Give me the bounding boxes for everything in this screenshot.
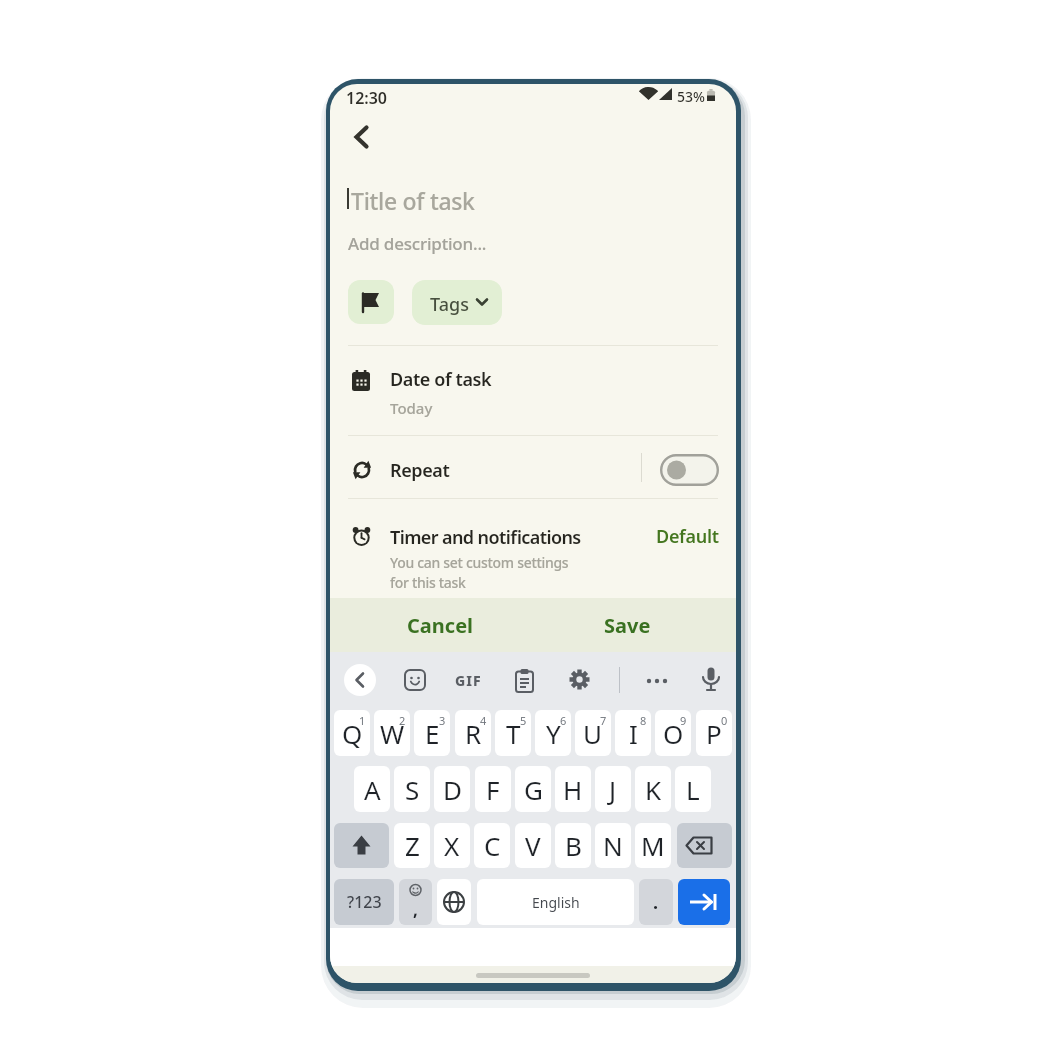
staticText: 6 <box>560 713 567 728</box>
button[interactable] <box>569 669 590 690</box>
button[interactable]: Q <box>334 710 370 756</box>
staticText: 3 <box>439 713 446 728</box>
button[interactable]: T <box>495 710 531 756</box>
staticText: R <box>465 716 482 751</box>
staticText: for this task <box>390 573 466 592</box>
staticText: Z <box>405 828 420 863</box>
button[interactable]: M <box>635 823 671 868</box>
staticText: J <box>609 772 617 807</box>
button[interactable]: H <box>555 766 591 812</box>
button[interactable] <box>334 823 389 868</box>
button[interactable]: A <box>354 766 390 812</box>
staticText: 5 <box>520 713 527 728</box>
button[interactable]: O <box>655 710 691 756</box>
staticText: X <box>444 828 460 863</box>
button[interactable] <box>354 126 369 148</box>
button[interactable] <box>701 667 721 693</box>
button[interactable] <box>344 664 376 696</box>
staticText: , <box>413 898 418 921</box>
button[interactable]: R <box>455 710 491 756</box>
staticText: I <box>629 716 638 751</box>
button[interactable]: Tags <box>412 280 502 325</box>
staticText: C <box>484 828 501 863</box>
staticText: Date of task <box>390 367 492 392</box>
staticText: H <box>563 772 583 807</box>
button[interactable] <box>660 454 719 486</box>
staticText: English <box>532 893 580 912</box>
staticText: L <box>686 772 700 807</box>
button[interactable]: U <box>575 710 611 756</box>
staticText: F <box>486 772 500 807</box>
staticText: 1 <box>359 713 366 728</box>
button[interactable]: X <box>434 823 470 868</box>
button[interactable]: W <box>374 710 410 756</box>
staticText: U <box>583 716 603 751</box>
button[interactable] <box>678 879 730 925</box>
staticText: Tags <box>430 292 469 317</box>
staticText: 0 <box>721 713 728 728</box>
staticText: Save <box>604 612 651 639</box>
button[interactable]: . <box>639 879 673 925</box>
staticText: Add description... <box>348 232 487 255</box>
button[interactable]: Date of task <box>330 354 736 429</box>
staticText: 53% <box>677 87 705 106</box>
button[interactable]: Y <box>535 710 571 756</box>
button[interactable]: F <box>475 766 511 812</box>
staticText: P <box>706 716 722 751</box>
staticText: 9 <box>680 713 687 728</box>
staticText: Y <box>546 716 561 751</box>
staticText: A <box>364 772 381 807</box>
staticText: Repeat <box>390 458 450 483</box>
staticText: E <box>425 716 440 751</box>
button[interactable]: E <box>414 710 450 756</box>
staticText: V <box>525 828 541 863</box>
button[interactable] <box>677 823 732 868</box>
button[interactable]: C <box>474 823 510 868</box>
staticText: 12:30 <box>346 87 388 109</box>
button[interactable]: Save <box>577 598 677 652</box>
button[interactable]: V <box>515 823 551 868</box>
button[interactable]: I <box>615 710 651 756</box>
button[interactable]: English <box>477 879 634 925</box>
button[interactable]: S <box>394 766 430 812</box>
staticText: You can set custom settings <box>390 553 569 572</box>
staticText: Q <box>342 716 363 751</box>
staticText: Today <box>390 398 433 418</box>
button[interactable]: N <box>595 823 631 868</box>
staticText: Cancel <box>407 612 474 639</box>
button[interactable]: G <box>515 766 551 812</box>
button[interactable]: Timer and notifications <box>330 514 736 594</box>
button[interactable]: B <box>555 823 591 868</box>
staticText: T <box>506 716 521 751</box>
button[interactable]: Repeat <box>330 444 736 492</box>
staticText: 8 <box>640 713 647 728</box>
staticText: K <box>645 772 662 807</box>
button[interactable] <box>348 280 394 324</box>
staticText: S <box>405 772 420 807</box>
button[interactable]: P <box>696 710 732 756</box>
staticText: N <box>603 828 623 863</box>
button[interactable] <box>404 669 426 691</box>
staticText: D <box>443 772 462 807</box>
button[interactable]: D <box>434 766 470 812</box>
staticText: Default <box>656 524 719 548</box>
button[interactable] <box>437 879 471 925</box>
staticText: GIF <box>455 671 482 690</box>
button[interactable] <box>646 677 668 685</box>
staticText: W <box>380 716 405 751</box>
staticText: Title of task <box>351 185 475 216</box>
button[interactable]: Cancel <box>390 598 490 652</box>
staticText: G <box>524 772 543 807</box>
staticText: 7 <box>600 713 607 728</box>
button[interactable]: L <box>675 766 711 812</box>
staticText: O <box>663 716 684 751</box>
staticText: M <box>641 828 665 863</box>
staticText: 2 <box>399 713 406 728</box>
button[interactable]: ?123 <box>334 879 394 925</box>
button[interactable]: Z <box>394 823 430 868</box>
staticText: Timer and notifications <box>390 525 581 550</box>
button[interactable]: K <box>635 766 671 812</box>
button[interactable]: , <box>399 879 432 925</box>
button[interactable] <box>515 669 534 693</box>
button[interactable]: J <box>595 766 631 812</box>
